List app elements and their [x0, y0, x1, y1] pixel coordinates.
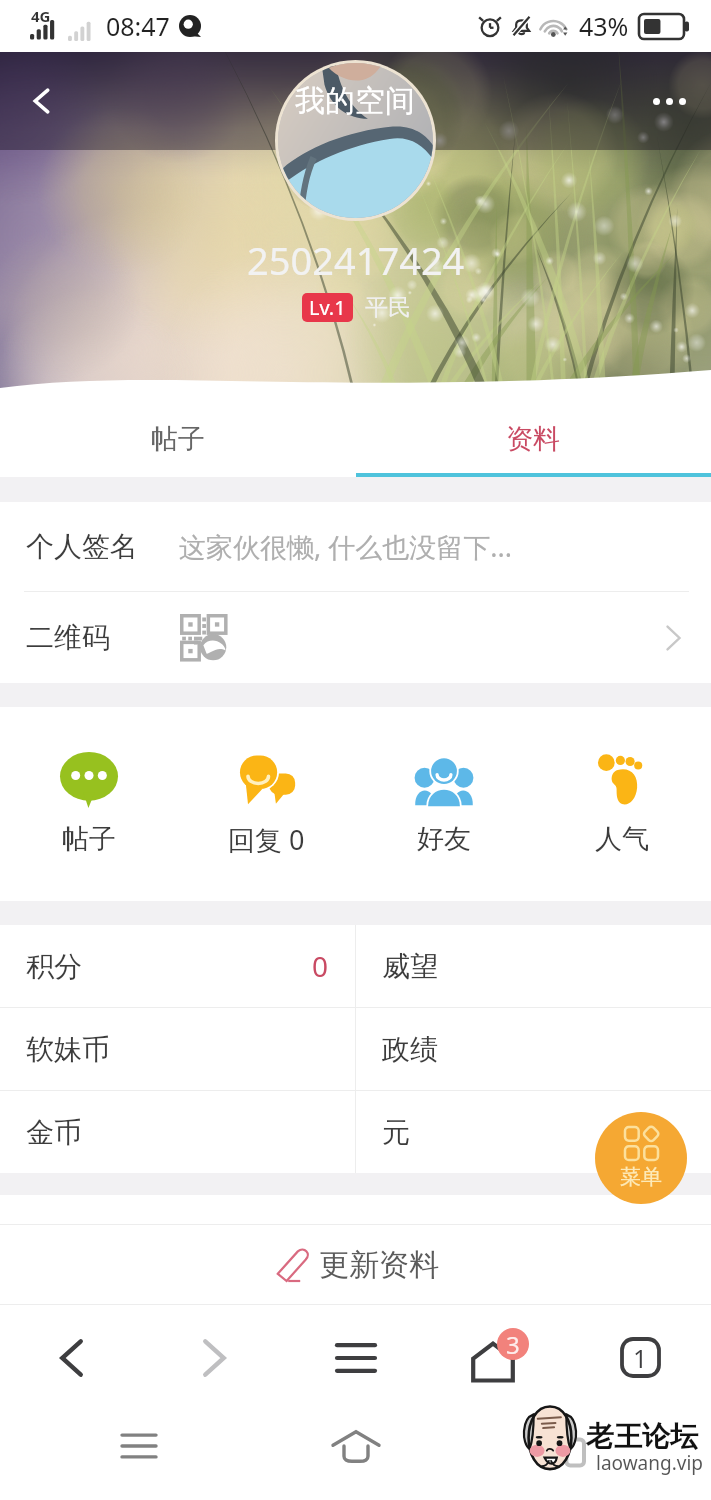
button[interactable]: Home	[427, 1305, 569, 1410]
staticText: Lv.1	[309, 294, 346, 321]
button[interactable]: 威望	[356, 925, 711, 1007]
button[interactable]: Tabs	[569, 1305, 711, 1410]
staticText: laowang.vip	[596, 1450, 704, 1476]
button[interactable]: 积分	[0, 925, 355, 1007]
button[interactable]: Back	[0, 1305, 143, 1410]
button[interactable]: 帖子	[0, 707, 177, 901]
staticText: 更新资料	[319, 1246, 439, 1284]
button[interactable]: 软妹币	[0, 1008, 355, 1090]
button[interactable]: 更新资料	[0, 1225, 711, 1304]
button[interactable]: 政绩	[356, 1008, 711, 1090]
staticText: 二维码	[26, 620, 110, 655]
staticText: 43%	[579, 9, 629, 43]
staticText: 1	[633, 1341, 648, 1375]
button[interactable]: 金币	[0, 1091, 355, 1173]
button[interactable]: Back	[14, 73, 70, 129]
staticText: 4G	[31, 6, 51, 26]
staticText: 资料	[506, 422, 560, 456]
staticText: 人气	[595, 822, 649, 856]
button[interactable]: Forward	[143, 1305, 285, 1410]
button[interactable]: Menu	[285, 1305, 427, 1410]
staticText: 2502417424	[247, 234, 465, 286]
button[interactable]: 个人签名	[0, 502, 711, 591]
staticText: 帖子	[151, 422, 205, 456]
staticText: 3	[506, 1328, 520, 1360]
staticText: 回复 0	[228, 821, 305, 858]
staticText: 0	[312, 947, 329, 985]
button[interactable]: 好友	[355, 707, 533, 901]
staticText: 菜单	[620, 1164, 662, 1190]
staticText: 好友	[417, 822, 471, 856]
staticText: 软妹币	[26, 1032, 110, 1067]
staticText: 威望	[382, 949, 438, 984]
staticText: 元	[382, 1115, 410, 1150]
staticText: 我的空间	[295, 82, 415, 120]
button[interactable]: More options	[641, 73, 697, 129]
button[interactable]: 回复 0	[177, 707, 355, 901]
button[interactable]: 帖子	[0, 400, 355, 477]
staticText: 金币	[26, 1115, 82, 1150]
button[interactable]: Menu	[595, 1112, 687, 1204]
staticText: 平民	[365, 293, 411, 322]
button[interactable]: 元	[356, 1091, 711, 1173]
staticText: 积分	[26, 949, 82, 984]
button[interactable]: 资料	[355, 400, 711, 477]
staticText: 这家伙很懒, 什么也没留下...	[179, 528, 512, 565]
staticText: 政绩	[382, 1032, 438, 1067]
staticText: 个人签名	[26, 529, 138, 564]
staticText: 帖子	[62, 822, 116, 856]
button[interactable]: 人气	[533, 707, 711, 901]
button[interactable]: 二维码	[0, 592, 711, 683]
staticText: 08:47	[106, 9, 170, 43]
staticText: 老王论坛	[586, 1419, 698, 1454]
